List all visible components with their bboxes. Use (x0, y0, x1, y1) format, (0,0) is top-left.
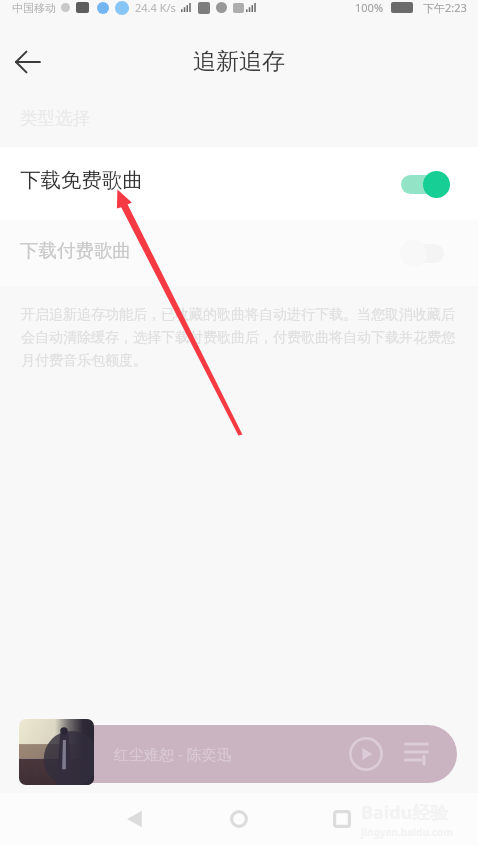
staticText: 24.4 K/s (135, 0, 176, 15)
button[interactable]: Playlist (395, 733, 437, 775)
button[interactable]: Home (216, 796, 262, 842)
button[interactable]: Back (6, 40, 50, 84)
button[interactable]: Play (348, 736, 384, 772)
button[interactable]: Recent apps (319, 796, 365, 842)
staticText: 下午2:23 (423, 0, 467, 15)
staticText: 红尘难恕 - 陈奕迅 (114, 744, 232, 764)
staticText: Baidu经验 (361, 800, 449, 825)
staticText: 类型选择 (20, 107, 90, 129)
staticText: 下载付费歌曲 (20, 239, 131, 262)
button[interactable]: Now playing album art (19, 719, 94, 785)
staticText: 中国移动 (12, 1, 56, 15)
button[interactable]: Back (112, 796, 158, 842)
button[interactable]: 下载付费歌曲 (0, 220, 478, 286)
button[interactable]: 红尘难恕 - 陈奕迅 (60, 725, 457, 783)
staticText: jingyan.baidu.com (361, 825, 453, 839)
button[interactable]: 下载免费歌曲 (0, 147, 478, 220)
staticText: 下载免费歌曲 (20, 167, 143, 193)
staticText: 追新追存 (193, 47, 285, 76)
staticText: 100% (355, 0, 384, 15)
staticText: 开启追新追存功能后，已收藏的歌曲将自动进行下载。当您取消收藏后会自动清除缓存，选… (21, 306, 461, 369)
